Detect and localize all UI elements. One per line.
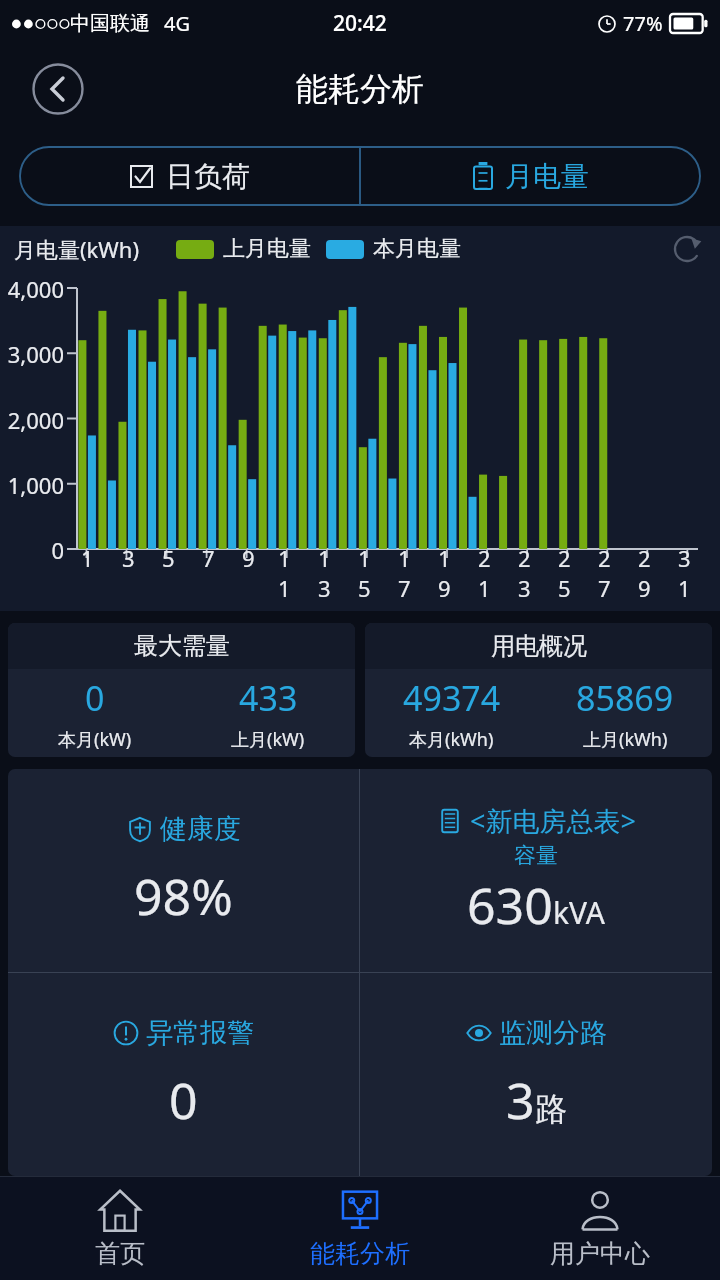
button[interactable]: 异常报警 [8, 973, 359, 1176]
staticText: 上月电量 [223, 235, 311, 263]
staticText: 17 [398, 543, 418, 603]
staticText: 首页 [95, 1238, 145, 1269]
staticText: 98% [134, 862, 233, 930]
staticText: 3 [506, 1066, 535, 1134]
staticText: 月电量 [505, 159, 589, 194]
staticText: 13 [318, 543, 338, 603]
staticText: 3,000 [0, 339, 64, 369]
staticText: 最大需量 [134, 631, 230, 661]
staticText: 0 [0, 535, 64, 565]
button[interactable]: 最大需量 [8, 623, 355, 757]
staticText: 月电量(kWh) [14, 234, 140, 264]
staticText: 29 [638, 543, 658, 603]
staticText: kVA [553, 892, 605, 933]
staticText: 3 [122, 543, 135, 573]
staticText: 15 [358, 543, 378, 603]
staticText: 31 [678, 543, 698, 603]
staticText: 7 [202, 543, 215, 573]
button[interactable]: 健康度 [8, 769, 359, 972]
staticText: 0 [85, 675, 105, 721]
staticText: 11 [278, 543, 298, 603]
staticText: 49374 [403, 675, 501, 721]
staticText: 21 [478, 543, 498, 603]
staticText: 19 [438, 543, 458, 603]
staticText: 25 [558, 543, 578, 603]
staticText: 健康度 [160, 812, 241, 846]
staticText: 1,000 [0, 470, 64, 500]
button[interactable]: Refresh [666, 228, 708, 270]
staticText: 上月(kWh) [583, 727, 668, 752]
staticText: 能耗分析 [296, 69, 424, 109]
staticText: 27 [598, 543, 618, 603]
staticText: 5 [162, 543, 175, 573]
button[interactable]: 监测分路 [360, 973, 712, 1176]
button[interactable]: 能耗分析 [240, 1177, 480, 1280]
button[interactable]: 日负荷 [19, 146, 360, 206]
staticText: 异常报警 [146, 1016, 254, 1050]
staticText: 85869 [576, 675, 674, 721]
staticText: 2,000 [0, 405, 64, 435]
staticText: 630 [467, 871, 553, 939]
staticText: 监测分路 [499, 1016, 607, 1050]
staticText: <新电房总表> [470, 802, 636, 839]
button[interactable]: 月电量 [360, 146, 701, 206]
staticText: 用户中心 [550, 1238, 650, 1269]
staticText: 上月(kW) [231, 727, 305, 752]
staticText: 77% [623, 10, 663, 37]
staticText: 20:42 [333, 9, 387, 38]
button[interactable]: Back [31, 62, 85, 116]
staticText: 本月电量 [373, 235, 461, 263]
staticText: 23 [518, 543, 538, 603]
staticText: 0 [169, 1066, 198, 1134]
staticText: 4G [164, 10, 190, 37]
staticText: 4,000 [0, 274, 64, 304]
button[interactable]: <新电房总表> [360, 769, 712, 972]
staticText: 中国联通 [70, 11, 150, 36]
staticText: 日负荷 [166, 159, 250, 194]
staticText: 本月(kWh) [409, 727, 494, 752]
staticText: 1 [81, 543, 94, 573]
staticText: 433 [239, 675, 298, 721]
staticText: 能耗分析 [310, 1238, 410, 1269]
button[interactable]: 首页 [0, 1177, 240, 1280]
staticText: 9 [242, 543, 255, 573]
staticText: 用电概况 [491, 631, 587, 661]
button[interactable]: 用户中心 [480, 1177, 720, 1280]
staticText: 路 [535, 1089, 567, 1129]
button[interactable]: 用电概况 [365, 623, 712, 757]
staticText: 本月(kW) [58, 727, 132, 752]
staticText: 容量 [514, 842, 558, 870]
